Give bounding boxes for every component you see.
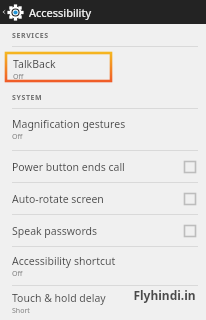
staticText: Power button ends call (12, 160, 125, 174)
staticText: TalkBack (13, 57, 56, 71)
button[interactable]: Accessibility shortcut (0, 247, 206, 285)
staticText: Accessibility shortcut (12, 254, 116, 268)
button[interactable]: Auto-rotate screen (0, 183, 206, 214)
other: Auto-rotate screen (184, 193, 196, 205)
staticText: SYSTEM (12, 93, 43, 103)
other: Power button ends call (184, 161, 196, 173)
button[interactable]: Touch & hold delay (0, 286, 206, 320)
button[interactable]: Back (0, 0, 8, 24)
staticText: Auto-rotate screen (12, 192, 104, 206)
button[interactable]: TalkBack (5, 52, 112, 82)
button[interactable]: Power button ends call (0, 151, 206, 182)
staticText: SERVICES (12, 31, 49, 41)
staticText: Off (12, 132, 23, 142)
staticText: Touch & hold delay (12, 291, 106, 305)
staticText: Speak passwords (12, 224, 97, 238)
other: Speak passwords (184, 225, 196, 237)
staticText: Magnification gestures (12, 117, 126, 131)
button[interactable]: Speak passwords (0, 215, 206, 246)
staticText: Off (12, 269, 23, 279)
button[interactable]: Magnification gestures (0, 109, 206, 150)
staticText: Short (12, 306, 30, 316)
staticText: Flyhindi.in (133, 287, 196, 303)
staticText: Off (13, 72, 24, 82)
staticText: Accessibility (29, 5, 92, 20)
